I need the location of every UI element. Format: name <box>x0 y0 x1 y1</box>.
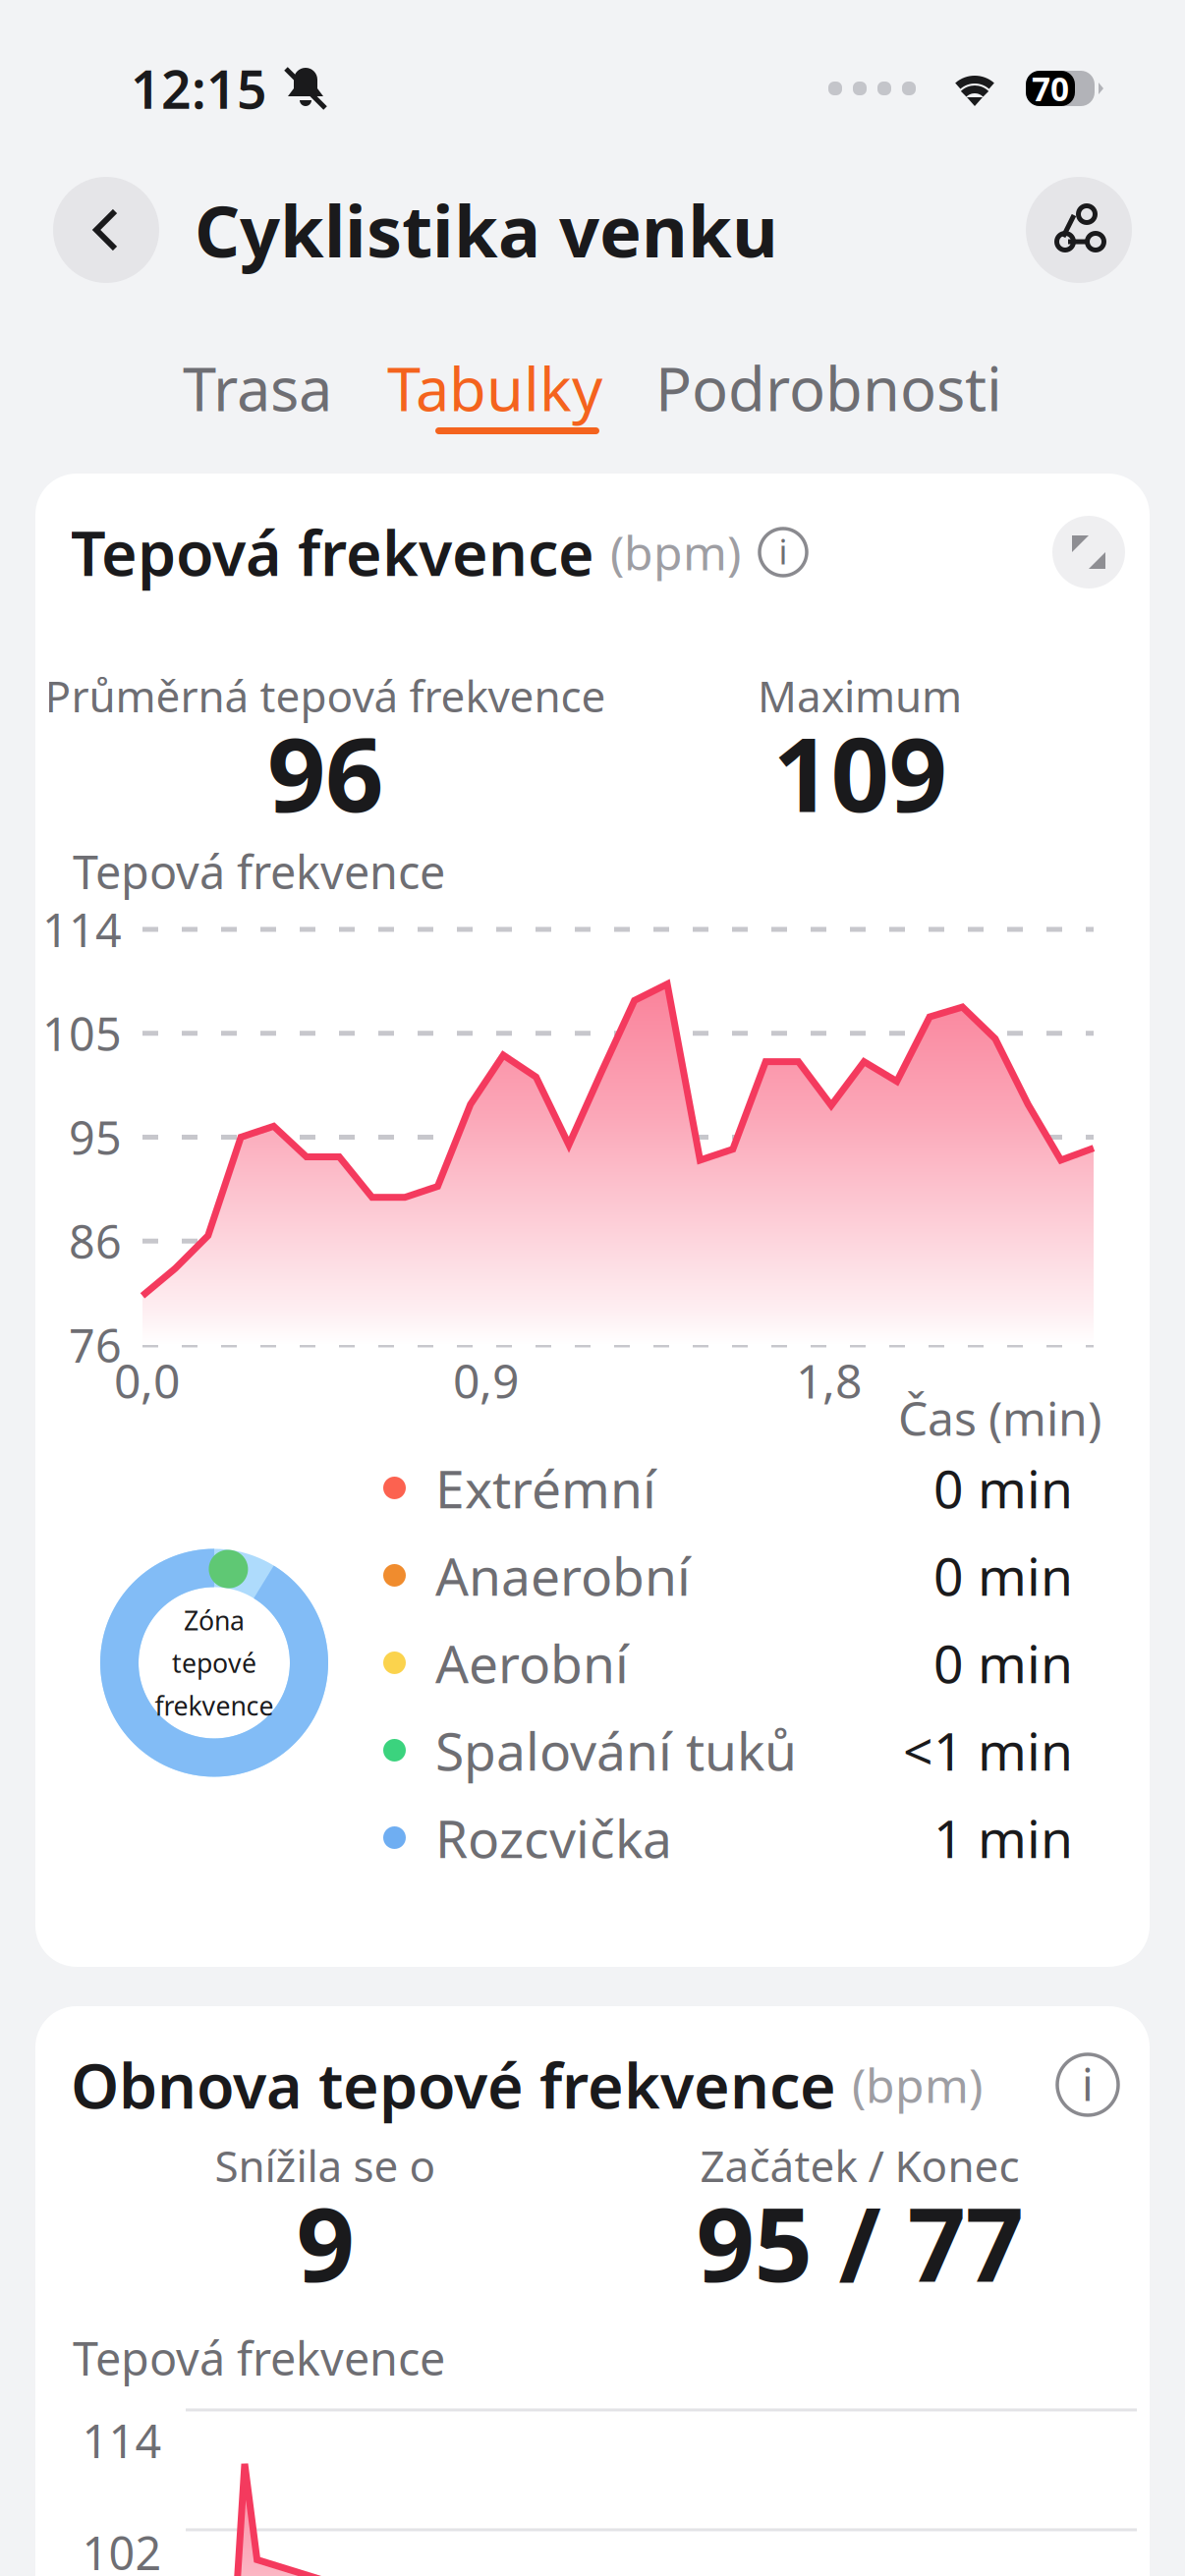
staticText: Obnova tepové frekvence <box>71 2044 836 2126</box>
staticText: i <box>1082 2054 1094 2113</box>
staticText: 9 <box>296 2174 354 2310</box>
staticText: <1 min <box>903 1715 1073 1785</box>
staticText: 102 <box>82 2522 162 2576</box>
staticText: 0 min <box>933 1541 1073 1610</box>
staticText: Snížila se o <box>215 2137 436 2194</box>
button[interactable]: Expand chart <box>1052 516 1125 588</box>
staticText: Cyklistika venku <box>195 183 778 277</box>
button[interactable]: Tabulky <box>387 348 602 428</box>
staticText: Extrémní <box>435 1453 656 1523</box>
button[interactable]: Podrobnosti <box>655 348 1002 428</box>
staticText: 95 / 77 <box>696 2174 1023 2310</box>
staticText: Tepová frekvence <box>73 841 445 902</box>
staticText: Trasa <box>183 348 332 428</box>
staticText: 1 min <box>933 1803 1073 1872</box>
staticText: Aerobní <box>435 1628 629 1698</box>
staticText: Tepová frekvence <box>73 2327 445 2388</box>
staticText: 76 <box>69 1315 122 1375</box>
button[interactable]: Back <box>53 177 159 283</box>
staticText: 0 min <box>933 1628 1073 1698</box>
staticText: Čas (min) <box>898 1386 1101 1449</box>
staticText: 0,9 <box>453 1349 519 1411</box>
button[interactable]: Share <box>1026 177 1132 283</box>
staticText: Zóna <box>184 1603 245 1638</box>
staticText: i <box>779 529 788 574</box>
staticText: Spalování tuků <box>435 1715 797 1785</box>
staticText: 109 <box>773 705 947 840</box>
staticText: (bpm) <box>852 2053 983 2116</box>
staticText: Rozcvička <box>435 1803 672 1872</box>
staticText: 114 <box>82 2410 162 2471</box>
staticText: 12:15 <box>131 54 267 123</box>
staticText: 86 <box>69 1211 122 1271</box>
staticText: 0,0 <box>114 1349 180 1411</box>
staticText: 95 <box>69 1107 122 1168</box>
staticText: Začátek / Konec <box>700 2137 1019 2194</box>
staticText: Anaerobní <box>435 1541 691 1610</box>
button[interactable]: Recovery info <box>1057 2054 1118 2115</box>
staticText: 105 <box>42 1003 122 1064</box>
staticText: 0 min <box>933 1453 1073 1523</box>
staticText: 96 <box>267 705 383 840</box>
staticText: Tabulky <box>387 348 602 428</box>
staticText: Podrobnosti <box>655 348 1002 428</box>
staticText: (bpm) <box>610 521 741 583</box>
staticText: 114 <box>42 899 122 960</box>
staticText: Průměrná tepová frekvence <box>45 667 606 724</box>
staticText: Tepová frekvence <box>71 511 594 593</box>
staticText: 1,8 <box>796 1349 862 1411</box>
button[interactable]: Trasa <box>183 348 332 428</box>
staticText: tepové <box>172 1645 256 1680</box>
button[interactable]: Heart rate info <box>760 529 807 576</box>
staticText: frekvence <box>155 1688 274 1723</box>
staticText: 70 <box>1032 67 1069 110</box>
staticText: Maximum <box>758 667 962 724</box>
